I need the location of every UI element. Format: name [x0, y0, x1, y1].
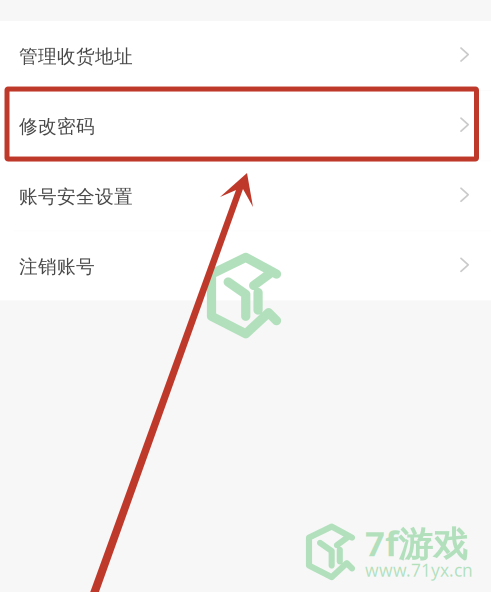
button[interactable]: 账号安全设置	[0, 161, 491, 230]
staticText: 注销账号	[19, 255, 95, 278]
button[interactable]: 注销账号	[0, 231, 491, 300]
staticText: www.71yx.cn	[365, 558, 473, 581]
staticText: 修改密码	[19, 115, 95, 138]
button[interactable]: 管理收货地址	[0, 21, 491, 90]
staticText: 账号安全设置	[19, 185, 133, 208]
button[interactable]: 修改密码	[0, 91, 491, 160]
staticText: 管理收货地址	[19, 45, 133, 68]
staticText: 7f游戏	[365, 520, 468, 566]
